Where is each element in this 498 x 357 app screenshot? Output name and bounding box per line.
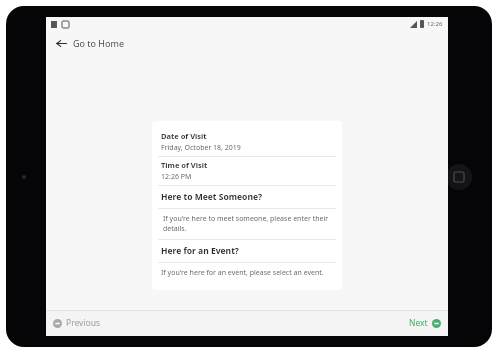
button[interactable]: Date of Visit xyxy=(152,128,342,156)
other: Back xyxy=(54,36,68,50)
button[interactable]: Previous xyxy=(46,313,108,333)
button[interactable]: If you're here to meet someone, please e… xyxy=(152,209,342,239)
button[interactable]: Here for an Event? xyxy=(152,240,342,262)
staticText: Go to Home xyxy=(73,37,124,49)
button[interactable]: Next xyxy=(402,313,448,333)
button[interactable]: Home xyxy=(446,164,472,190)
staticText: Previous xyxy=(66,317,101,329)
staticText: If you're here to meet someone, please e… xyxy=(163,214,333,234)
staticText: Time of Visit xyxy=(161,160,208,170)
button[interactable]: Back xyxy=(46,31,448,54)
staticText: Date of Visit xyxy=(161,131,207,141)
staticText: Here to Meet Someone? xyxy=(161,191,263,203)
staticText: Friday, October 18, 2019 xyxy=(161,143,241,153)
button[interactable]: Time of Visit xyxy=(152,157,342,185)
staticText: If you're here for an event, please sele… xyxy=(161,268,324,278)
staticText: Next xyxy=(409,317,428,329)
button[interactable]: If you're here for an event, please sele… xyxy=(152,263,342,283)
button[interactable]: Here to Meet Someone? xyxy=(152,186,342,208)
other: Next xyxy=(432,319,441,328)
staticText: Here for an Event? xyxy=(161,245,239,257)
other: Previous xyxy=(53,319,62,328)
staticText: 12:26 xyxy=(427,20,443,28)
staticText: 12:26 PM xyxy=(161,172,192,182)
